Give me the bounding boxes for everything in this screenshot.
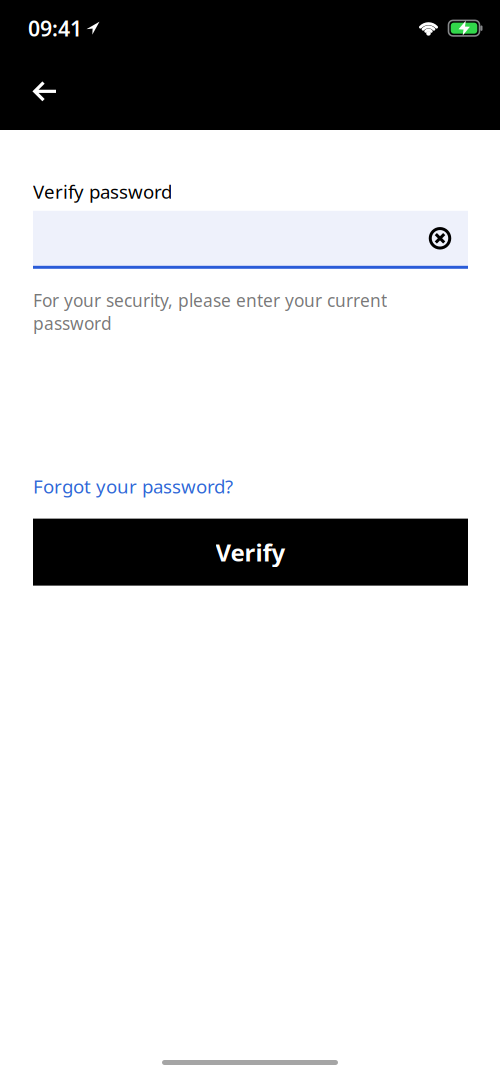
button[interactable]: Forgot your password? <box>33 474 233 499</box>
staticText: For your security, please enter your cur… <box>33 289 387 335</box>
button[interactable]: Back <box>0 42 57 109</box>
button[interactable]: Verify <box>33 519 468 586</box>
staticText: Verify password <box>33 179 172 204</box>
staticText: 09:41 <box>28 14 82 42</box>
staticText: Verify <box>215 536 285 568</box>
button[interactable]: Clear text <box>429 227 451 249</box>
staticText: Forgot your password? <box>33 474 233 499</box>
